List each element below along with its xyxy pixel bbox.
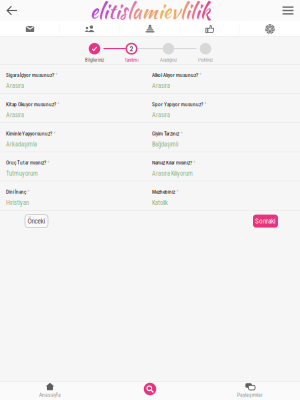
staticText: e xyxy=(90,0,98,26)
button[interactable]: Profiliniz xyxy=(187,43,224,64)
staticText: Sigara İçiyor musunuz? xyxy=(6,72,54,78)
button[interactable]: Spor Yapıyor musunuz? xyxy=(152,94,300,122)
staticText: i xyxy=(195,0,200,26)
staticText: Arasıra xyxy=(6,111,24,119)
staticText: Arasıra xyxy=(6,82,24,90)
button[interactable]: Settings xyxy=(240,21,300,37)
staticText: t xyxy=(108,0,115,26)
staticText: v xyxy=(171,0,180,26)
staticText: Namaz Kılar mısınız? xyxy=(152,160,192,166)
staticText: 2 xyxy=(129,44,133,53)
button[interactable]: Dini İnanç xyxy=(6,181,150,210)
staticText: a xyxy=(132,0,142,26)
staticText: Alkol Alıyor musunuz? xyxy=(152,72,198,78)
staticText: * xyxy=(57,102,59,107)
button[interactable]: Anasayfa xyxy=(0,381,100,400)
button[interactable]: Bilgileriniz xyxy=(76,43,113,64)
staticText: Arasıra Kılıyorum xyxy=(152,170,193,177)
button[interactable]: 2 xyxy=(113,43,150,64)
staticText: Oruç Tutar mısınız? xyxy=(6,160,46,166)
staticText: Bağdaşımlı xyxy=(152,141,178,148)
staticText: Dini İnanç xyxy=(6,189,26,195)
staticText: * xyxy=(193,160,195,165)
staticText: Arasıra xyxy=(152,82,170,90)
button[interactable]: Menu xyxy=(276,0,300,21)
staticText: * xyxy=(180,131,182,136)
staticText: m xyxy=(142,0,158,26)
button[interactable]: Search xyxy=(100,381,200,400)
staticText: * xyxy=(55,73,57,78)
button[interactable]: Likes xyxy=(180,21,240,37)
staticText: k xyxy=(200,0,210,26)
button[interactable]: Önceki xyxy=(25,215,48,228)
button[interactable]: Sonraki xyxy=(253,215,278,228)
staticText: e xyxy=(163,0,171,26)
staticText: Giyim Tarzınız xyxy=(152,131,179,137)
staticText: Anasayfa xyxy=(39,392,61,398)
staticText: Önceki xyxy=(27,217,45,225)
staticText: * xyxy=(204,102,206,107)
button[interactable]: Kiminle Yaşıyorsunuz? xyxy=(6,123,150,152)
staticText: Arasıra xyxy=(152,111,170,119)
staticText: Spor Yapıyor musunuz? xyxy=(152,101,203,107)
staticText: Aradığınız xyxy=(160,57,177,63)
button[interactable]: Giyim Tarzınız xyxy=(152,123,300,152)
staticText: Kiminle Yaşıyorsunuz? xyxy=(6,131,52,137)
button[interactable]: Kitap Okuyor musunuz? xyxy=(6,94,150,122)
staticText: Bilgileriniz xyxy=(85,57,104,63)
button[interactable]: Alkol Alıyor musunuz? xyxy=(152,65,300,93)
staticText: * xyxy=(27,189,29,195)
staticText: i xyxy=(103,0,108,26)
staticText: Profiliniz xyxy=(198,57,213,63)
staticText: Hıristiyan xyxy=(6,199,29,206)
staticText: * xyxy=(176,189,178,195)
staticText: Katolik xyxy=(152,199,168,206)
staticText: l xyxy=(190,0,195,26)
staticText: l xyxy=(127,0,132,26)
button[interactable]: Sigara İçiyor musunuz? xyxy=(6,65,150,93)
staticText: Arkadaşımla xyxy=(6,141,37,148)
staticText: * xyxy=(53,131,55,136)
staticText: Tanıtımı xyxy=(124,57,138,63)
button[interactable]: Mezhebiniz xyxy=(152,181,300,210)
staticText: l xyxy=(180,0,185,26)
button[interactable]: Search xyxy=(143,382,156,395)
staticText: i xyxy=(185,0,190,26)
button[interactable]: Oruç Tutar mısınız? xyxy=(6,152,150,181)
button[interactable]: Paylaşımlar xyxy=(200,381,300,400)
button[interactable]: Namaz Kılar mısınız? xyxy=(152,152,300,181)
staticText: s xyxy=(120,0,127,26)
staticText: l xyxy=(98,0,103,26)
button[interactable]: Requests xyxy=(60,21,120,37)
staticText: i xyxy=(115,0,120,26)
staticText: Sonraki xyxy=(255,217,276,225)
button[interactable]: Messages xyxy=(0,21,60,37)
staticText: Kitap Okuyor musunuz? xyxy=(6,101,56,107)
staticText: Mezhebiniz xyxy=(152,189,175,195)
staticText: * xyxy=(199,73,201,78)
button[interactable]: Visitors xyxy=(120,21,180,37)
staticText: Tutmuyorum xyxy=(6,170,38,177)
staticText: i xyxy=(158,0,163,26)
button[interactable]: Back xyxy=(0,0,24,21)
button[interactable]: Aradığınız xyxy=(150,43,187,64)
staticText: * xyxy=(47,160,49,165)
staticText: Paylaşımlar xyxy=(237,392,263,398)
